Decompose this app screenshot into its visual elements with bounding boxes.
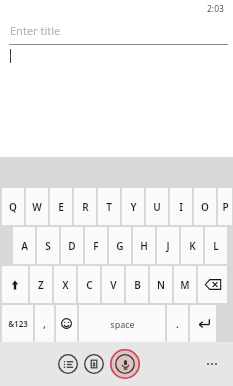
- button[interactable]: J: [157, 227, 179, 264]
- staticText: C: [86, 278, 93, 292]
- staticText: R: [82, 200, 89, 214]
- staticText: T: [106, 200, 112, 214]
- button[interactable]: M: [174, 266, 196, 303]
- button[interactable]: O: [194, 188, 216, 225]
- button[interactable]: B: [126, 266, 148, 303]
- button[interactable]: R: [74, 188, 96, 225]
- button[interactable]: S: [37, 227, 59, 264]
- staticText: J: [166, 239, 170, 253]
- staticText: L: [213, 239, 219, 253]
- button[interactable]: E: [50, 188, 72, 225]
- button[interactable]: K: [181, 227, 203, 264]
- staticText: B: [134, 278, 141, 292]
- button[interactable]: N: [150, 266, 172, 303]
- staticText: P: [222, 200, 229, 214]
- staticText: 2:03: [207, 3, 224, 15]
- button[interactable]: Q: [2, 188, 24, 225]
- staticText: Z: [38, 278, 44, 292]
- button[interactable]: F: [85, 227, 107, 264]
- button[interactable]: ,: [35, 305, 54, 342]
- staticText: Y: [130, 200, 137, 214]
- button[interactable]: Shift: [2, 266, 28, 303]
- button[interactable]: P: [218, 188, 232, 225]
- button[interactable]: L: [205, 227, 227, 264]
- button[interactable]: I: [170, 188, 192, 225]
- staticText: F: [93, 239, 99, 253]
- button[interactable]: Insert picture: [84, 354, 104, 374]
- button[interactable]: W: [26, 188, 48, 225]
- staticText: Enter title: [10, 23, 61, 38]
- button[interactable]: D: [61, 227, 83, 264]
- staticText: I: [179, 200, 183, 214]
- button[interactable]: V: [102, 266, 124, 303]
- staticText: E: [58, 200, 64, 214]
- button[interactable]: Checklist: [58, 354, 78, 374]
- button[interactable]: Enter: [190, 305, 216, 342]
- staticText: G: [116, 239, 124, 253]
- button[interactable]: T: [98, 188, 120, 225]
- button[interactable]: Emoji: [56, 305, 77, 342]
- staticText: Q: [9, 200, 17, 214]
- button[interactable]: .: [167, 305, 188, 342]
- button[interactable]: G: [109, 227, 131, 264]
- button[interactable]: X: [54, 266, 76, 303]
- button[interactable]: A: [13, 227, 35, 264]
- button[interactable]: Enter title: [1, 17, 228, 44]
- staticText: M: [180, 278, 190, 292]
- staticText: H: [140, 239, 148, 253]
- button[interactable]: Z: [30, 266, 52, 303]
- staticText: .: [176, 317, 179, 331]
- button[interactable]: Backspace: [198, 266, 227, 303]
- button[interactable]: More options: [201, 353, 223, 375]
- staticText: N: [157, 278, 165, 292]
- button[interactable]: space: [79, 305, 165, 342]
- staticText: U: [153, 200, 161, 214]
- staticText: W: [32, 200, 42, 214]
- staticText: D: [68, 239, 76, 253]
- button[interactable]: H: [133, 227, 155, 264]
- staticText: O: [201, 200, 209, 214]
- staticText: X: [62, 278, 69, 292]
- button[interactable]: U: [146, 188, 168, 225]
- staticText: space: [110, 318, 135, 330]
- staticText: &123: [8, 318, 28, 329]
- button[interactable]: Voice note: [110, 349, 140, 379]
- staticText: V: [110, 278, 117, 292]
- button[interactable]: C: [78, 266, 100, 303]
- button[interactable]: &123: [2, 305, 33, 342]
- staticText: S: [45, 239, 51, 253]
- staticText: A: [21, 239, 28, 253]
- staticText: K: [189, 239, 196, 253]
- staticText: ,: [43, 317, 46, 331]
- button[interactable]: Y: [122, 188, 144, 225]
- button[interactable]: [1, 45, 228, 157]
